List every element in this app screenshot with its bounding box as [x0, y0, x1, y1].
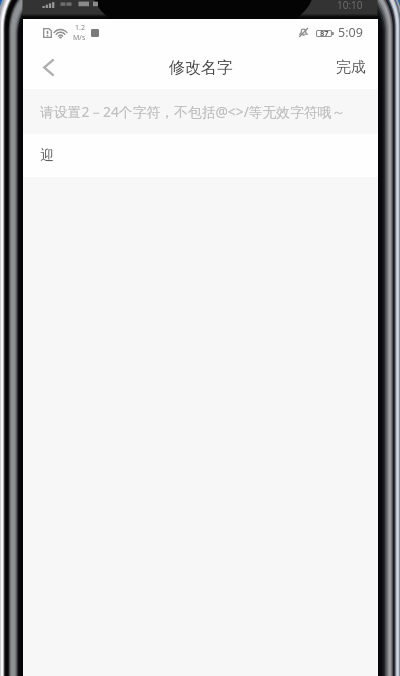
- staticText: 修改名字: [169, 58, 233, 78]
- staticText: 迎: [40, 147, 54, 165]
- staticText: 完成: [336, 58, 366, 77]
- button[interactable]: 返回: [23, 46, 67, 89]
- staticText: 5:09: [338, 24, 363, 41]
- button[interactable]: 迎: [23, 134, 378, 177]
- staticText: 10:10: [337, 0, 363, 12]
- staticText: 87: [320, 28, 329, 38]
- staticText: 1.2: [75, 23, 85, 33]
- button[interactable]: 完成: [324, 48, 378, 87]
- staticText: 请设置2－24个字符，不包括@<>/等无效字符哦～: [40, 102, 346, 121]
- staticText: M/s: [73, 33, 86, 43]
